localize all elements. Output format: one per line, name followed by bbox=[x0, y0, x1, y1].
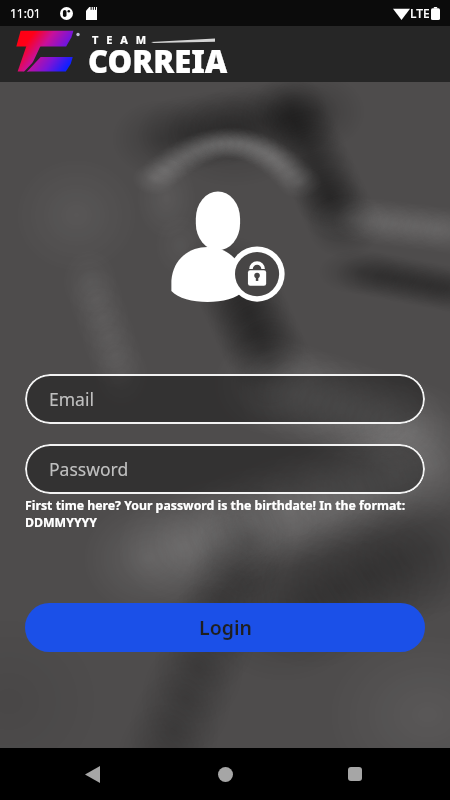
staticText: Login bbox=[199, 614, 252, 641]
staticText: CORREIA bbox=[88, 40, 228, 82]
button[interactable]: Back bbox=[70, 752, 114, 796]
button[interactable]: Recents bbox=[333, 752, 377, 796]
staticText: First time here? Your password is the bi… bbox=[25, 497, 425, 531]
button[interactable]: Home bbox=[203, 752, 247, 796]
staticText: Email bbox=[49, 387, 94, 411]
button[interactable]: Login bbox=[25, 603, 425, 652]
staticText: T E A M bbox=[92, 32, 149, 47]
staticText: 11:01 bbox=[10, 5, 41, 21]
staticText: LTE bbox=[410, 5, 430, 21]
button[interactable]: Email bbox=[25, 374, 425, 424]
staticText: Password bbox=[49, 457, 129, 481]
button[interactable]: Password bbox=[25, 444, 425, 494]
